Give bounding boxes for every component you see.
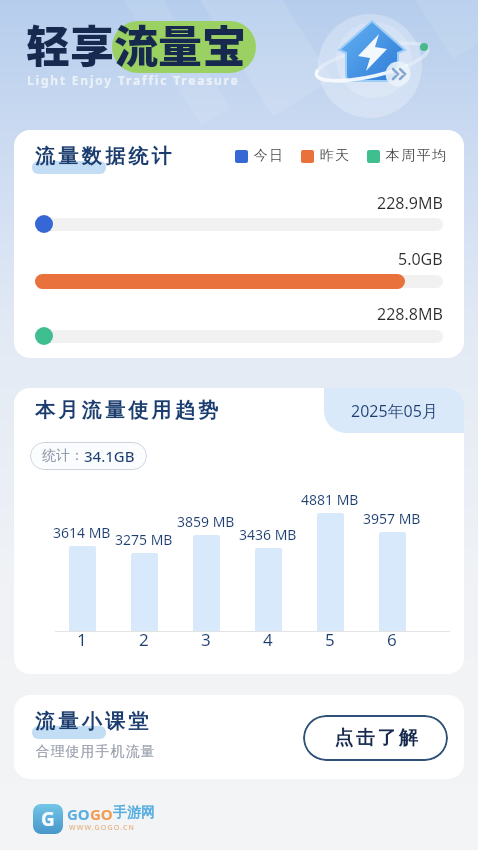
- staticText: GO: [90, 804, 113, 824]
- staticText: 2: [139, 628, 149, 651]
- staticText: WWW.GOGO.CN: [69, 823, 136, 833]
- staticText: 统计：: [42, 447, 84, 465]
- staticText: 2025年05月: [351, 400, 438, 422]
- staticText: 3: [201, 628, 211, 651]
- staticText: 1: [77, 628, 87, 651]
- staticText: 流量小课堂: [35, 709, 152, 734]
- staticText: 本周平均: [385, 147, 447, 165]
- staticText: 4: [263, 628, 273, 651]
- staticText: 本月流量使用趋势: [35, 398, 222, 423]
- staticText: 昨天: [319, 147, 350, 165]
- button[interactable]: 点击了解: [303, 715, 448, 761]
- staticText: 手游网: [113, 804, 155, 822]
- staticText: 228.8MB: [377, 303, 443, 325]
- staticText: 轻享流量宝: [26, 12, 246, 76]
- staticText: 5.0GB: [398, 248, 443, 270]
- staticText: 3275 MB: [115, 530, 173, 549]
- staticText: 3859 MB: [177, 512, 235, 531]
- staticText: 3957 MB: [363, 509, 421, 528]
- staticText: 228.9MB: [377, 192, 443, 214]
- staticText: GO: [67, 804, 90, 824]
- staticText: 6: [387, 628, 397, 651]
- staticText: G: [41, 806, 55, 832]
- button[interactable]: G: [33, 804, 155, 834]
- staticText: 34.1GB: [84, 446, 135, 466]
- staticText: 3436 MB: [239, 525, 297, 544]
- staticText: 3614 MB: [53, 523, 111, 542]
- staticText: 4881 MB: [301, 490, 359, 509]
- staticText: 今日: [253, 147, 284, 165]
- staticText: 合理使用手机流量: [35, 743, 155, 761]
- staticText: Light Enjoy Traffic Treasure: [27, 72, 240, 88]
- button[interactable]: [310, 8, 450, 120]
- staticText: 点击了解: [333, 726, 419, 750]
- staticText: 流量数据统计: [35, 144, 175, 169]
- staticText: 5: [325, 628, 335, 651]
